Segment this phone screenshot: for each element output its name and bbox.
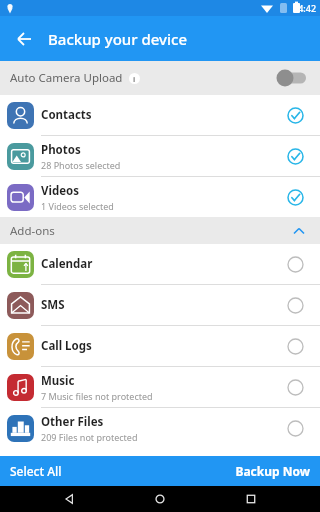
staticText: 7 Music files not protected bbox=[41, 390, 153, 402]
other: SMS not selected bbox=[280, 290, 310, 320]
button[interactable]: Photos bbox=[0, 136, 320, 176]
staticText: i bbox=[133, 74, 136, 84]
staticText: SMS bbox=[41, 297, 65, 313]
other: Videos selected bbox=[280, 182, 310, 212]
staticText: Videos bbox=[41, 183, 80, 199]
button[interactable]: Videos bbox=[0, 177, 320, 217]
staticText: 14:42 bbox=[293, 2, 317, 14]
button[interactable]: Back bbox=[47, 486, 91, 512]
button[interactable]: Select All bbox=[0, 456, 160, 486]
button[interactable]: Home bbox=[138, 486, 182, 512]
button[interactable]: Other Files bbox=[0, 408, 320, 448]
other: Collapse Add-ons bbox=[288, 220, 310, 242]
staticText: Music bbox=[41, 373, 75, 389]
staticText: Calendar bbox=[41, 256, 93, 272]
other: Call Logs not selected bbox=[280, 331, 310, 361]
button[interactable]: Contacts bbox=[0, 95, 320, 135]
other: Photos selected bbox=[280, 141, 310, 171]
staticText: 28 Photos selected bbox=[41, 159, 121, 171]
button[interactable]: Auto Camera Upload bbox=[0, 61, 320, 95]
staticText: 1 Videos selected bbox=[41, 200, 114, 212]
other: Other Files not selected bbox=[280, 413, 310, 443]
staticText: Select All bbox=[10, 463, 62, 479]
staticText: 209 Files not protected bbox=[41, 431, 138, 443]
staticText: Call Logs bbox=[41, 338, 92, 354]
button[interactable]: Call Logs bbox=[0, 326, 320, 366]
button[interactable]: Add-ons bbox=[0, 217, 320, 244]
other: Calendar not selected bbox=[280, 249, 310, 279]
other: Music not selected bbox=[280, 372, 310, 402]
button[interactable]: Recents bbox=[229, 486, 273, 512]
staticText: Contacts bbox=[41, 107, 92, 123]
button[interactable]: Auto Camera Upload toggle bbox=[276, 68, 310, 88]
button[interactable]: Back bbox=[0, 16, 48, 61]
button[interactable]: Backup Now bbox=[160, 456, 320, 486]
staticText: Photos bbox=[41, 142, 81, 158]
staticText: Add-ons bbox=[10, 223, 55, 239]
staticText: Auto Camera Upload bbox=[10, 70, 123, 86]
button[interactable]: Music bbox=[0, 367, 320, 407]
staticText: Backup Now bbox=[235, 463, 310, 479]
button[interactable]: SMS bbox=[0, 285, 320, 325]
other: Contacts selected bbox=[280, 100, 310, 130]
staticText: Other Files bbox=[41, 414, 104, 430]
staticText: Backup your device bbox=[48, 29, 188, 49]
button[interactable]: Calendar bbox=[0, 244, 320, 284]
